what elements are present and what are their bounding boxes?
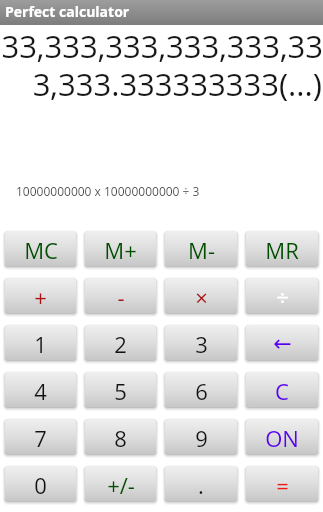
staticText: 3 (195, 329, 208, 359)
staticText: +/- (107, 470, 135, 500)
button[interactable]: M+ (85, 231, 156, 266)
button[interactable]: 8 (85, 419, 156, 454)
button[interactable]: 5 (85, 372, 156, 407)
staticText: 8 (114, 423, 127, 453)
staticText: 10000000000 x 10000000000 ÷ 3 (16, 183, 200, 199)
staticText: 3,333.333333333(...) (1, 63, 322, 105)
staticText: 6 (195, 376, 208, 406)
button[interactable]: ÷ (246, 278, 318, 313)
staticText: M+ (104, 235, 137, 265)
staticText: 1 (34, 329, 47, 359)
button[interactable]: 2 (85, 325, 156, 360)
staticText: 33,333,333,333,333,33 (1, 25, 322, 67)
staticText: 4 (34, 376, 47, 406)
staticText: 9 (195, 423, 208, 453)
staticText: + (34, 282, 47, 312)
button[interactable]: ON (246, 419, 318, 454)
button[interactable]: × (165, 278, 237, 313)
button[interactable]: . (165, 466, 237, 501)
button[interactable]: 6 (165, 372, 237, 407)
button[interactable]: + (5, 278, 76, 313)
staticText: Perfect calculator (5, 2, 130, 21)
button[interactable]: 9 (165, 419, 237, 454)
button[interactable]: 4 (5, 372, 76, 407)
staticText: M- (188, 235, 215, 265)
button[interactable]: - (85, 278, 156, 313)
button[interactable]: 1 (5, 325, 76, 360)
button[interactable]: 0 (5, 466, 76, 501)
staticText: 2 (114, 329, 127, 359)
button[interactable]: C (246, 372, 318, 407)
staticText: MR (265, 235, 299, 265)
staticText: ON (265, 423, 299, 453)
button[interactable]: = (246, 466, 318, 501)
button[interactable]: +/- (85, 466, 156, 501)
button[interactable]: 7 (5, 419, 76, 454)
staticText: ← (273, 331, 292, 357)
staticText: . (198, 470, 204, 500)
button[interactable]: MC (5, 231, 76, 266)
button[interactable]: M- (165, 231, 237, 266)
staticText: 5 (114, 376, 127, 406)
staticText: C (275, 376, 289, 406)
staticText: = (276, 470, 289, 500)
staticText: × (195, 282, 208, 312)
button[interactable]: 3 (165, 325, 237, 360)
staticText: MC (24, 235, 58, 265)
staticText: ÷ (276, 282, 289, 312)
staticText: - (117, 282, 125, 312)
button[interactable]: MR (246, 231, 318, 266)
staticText: 7 (34, 423, 47, 453)
staticText: 0 (34, 470, 47, 500)
button[interactable]: ← (246, 325, 318, 360)
